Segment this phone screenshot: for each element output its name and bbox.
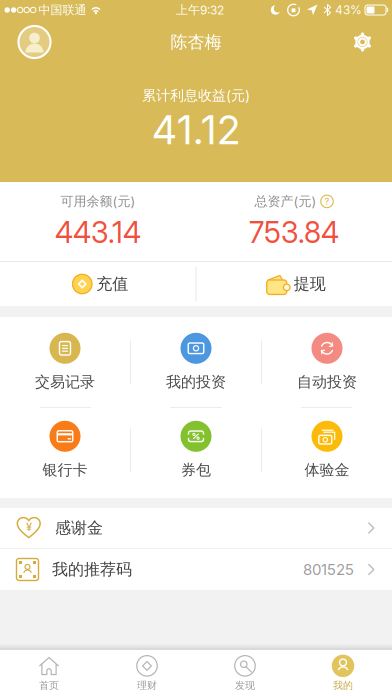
button[interactable]: 设置 xyxy=(352,31,373,52)
button[interactable]: 头像 xyxy=(18,25,51,58)
button[interactable]: 我的投资 xyxy=(131,317,261,407)
staticText: 自动投资 xyxy=(297,373,357,391)
staticText: 可用余额(元) xyxy=(60,193,135,209)
button[interactable]: 券包 xyxy=(131,405,261,495)
button[interactable]: ¥ xyxy=(0,508,392,548)
staticText: 中国联通 xyxy=(38,3,86,17)
staticText: 我的推荐码 xyxy=(52,560,132,579)
staticText: ¥ xyxy=(26,520,32,533)
staticText: ? xyxy=(324,196,329,207)
button[interactable]: 银行卡 xyxy=(0,405,130,495)
staticText: 43% xyxy=(335,3,362,17)
staticText: 提现 xyxy=(294,274,326,294)
staticText: 我的投资 xyxy=(166,373,226,391)
staticText: 发现 xyxy=(235,679,255,692)
staticText: 券包 xyxy=(181,461,211,479)
staticText: 体验金 xyxy=(304,461,349,479)
staticText: 充值 xyxy=(96,274,128,294)
button[interactable]: 理财 xyxy=(98,650,196,696)
staticText: 41.12 xyxy=(151,106,240,153)
staticText: 交易记录 xyxy=(35,373,95,391)
staticText: 陈杏梅 xyxy=(170,32,221,52)
staticText: 我的 xyxy=(333,679,353,692)
staticText: 累计利息收益(元) xyxy=(142,87,250,104)
button[interactable]: 自动投资 xyxy=(262,317,392,407)
staticText: 上午9:32 xyxy=(176,3,224,17)
button[interactable]: 交易记录 xyxy=(0,317,130,407)
staticText: 443.14 xyxy=(55,215,141,250)
staticText: 银行卡 xyxy=(42,461,87,479)
button[interactable]: 充值 xyxy=(0,262,195,306)
staticText: 801525 xyxy=(303,561,354,578)
button[interactable]: 提现 xyxy=(196,262,392,306)
staticText: 首页 xyxy=(39,679,59,692)
button[interactable]: 首页 xyxy=(0,650,98,696)
staticText: 理财 xyxy=(137,679,157,692)
button[interactable]: 我的推荐码 xyxy=(0,549,392,590)
staticText: 感谢金 xyxy=(55,518,103,538)
button[interactable]: 我的 xyxy=(294,650,392,696)
button[interactable]: 发现 xyxy=(196,650,294,696)
staticText: 753.84 xyxy=(249,215,339,250)
staticText: 总资产(元) xyxy=(254,193,316,209)
button[interactable]: 体验金 xyxy=(262,405,392,495)
